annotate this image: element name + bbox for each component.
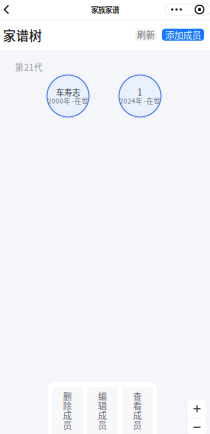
staticText: 家族家谱 xyxy=(91,4,119,15)
staticText: 刷新 xyxy=(137,28,155,41)
staticText: 车寿志 xyxy=(56,86,80,98)
button[interactable]: 放大 xyxy=(188,400,206,418)
staticText: 除 xyxy=(63,399,72,412)
button[interactable]: 缩小 xyxy=(188,418,206,434)
button[interactable]: 查看成员 xyxy=(122,387,153,434)
button[interactable]: 刷新 xyxy=(135,29,157,41)
staticText: 成 xyxy=(63,409,72,422)
button[interactable]: 车寿志 xyxy=(47,75,89,117)
button[interactable]: 1 xyxy=(119,75,161,117)
staticText: 看 xyxy=(133,399,142,412)
button[interactable]: 返回 xyxy=(0,0,13,19)
button[interactable]: 添加成员 xyxy=(162,29,204,41)
staticText: 第21代 xyxy=(15,61,43,73)
staticText: 查 xyxy=(133,389,142,402)
staticText: 添加成员 xyxy=(165,28,201,41)
staticText: 员 xyxy=(98,419,107,431)
button[interactable]: 编辑成员 xyxy=(87,387,118,434)
button[interactable]: 更多 xyxy=(165,4,210,15)
staticText: 成 xyxy=(98,409,107,422)
button[interactable]: 删除成员 xyxy=(52,387,83,434)
staticText: 员 xyxy=(133,419,142,431)
staticText: 家谱树 xyxy=(3,25,42,44)
staticText: 2000年 - 在世 xyxy=(47,96,88,105)
staticText: 成 xyxy=(133,409,142,422)
staticText: 员 xyxy=(63,419,72,431)
staticText: 1 xyxy=(137,86,142,98)
staticText: 辑 xyxy=(98,399,107,412)
staticText: 编 xyxy=(98,389,107,402)
staticText: 删 xyxy=(63,389,72,402)
staticText: 2024年 - 在世 xyxy=(119,96,160,105)
